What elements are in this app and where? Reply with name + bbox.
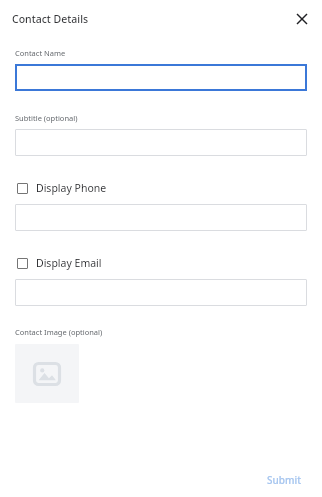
button[interactable]: Add contact image [15, 344, 79, 403]
button[interactable]: Display Phone [15, 180, 307, 196]
button[interactable]: Submit [262, 470, 306, 490]
button[interactable] [15, 129, 307, 156]
button[interactable]: Display Email [15, 255, 307, 271]
staticText: Contact Image (optional) [15, 327, 103, 337]
button[interactable]: Close [292, 9, 312, 29]
staticText: Contact Name [15, 48, 66, 58]
button[interactable] [15, 204, 307, 231]
staticText: Display Email [36, 256, 102, 270]
button[interactable] [15, 64, 307, 91]
staticText: Display Phone [36, 181, 107, 195]
button[interactable] [15, 279, 307, 306]
staticText: Subtitle (optional) [15, 113, 78, 123]
staticText: Submit [267, 473, 301, 487]
staticText: Contact Details [12, 12, 89, 26]
